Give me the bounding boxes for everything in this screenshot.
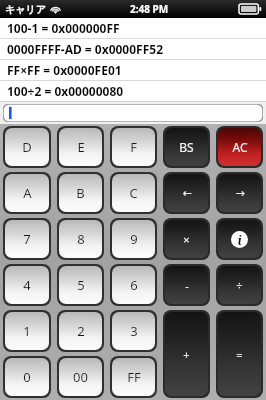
staticText: i — [237, 232, 242, 248]
button[interactable]: BS — [165, 128, 208, 166]
staticText: 6 — [130, 276, 138, 294]
staticText: 3 — [130, 322, 138, 340]
staticText: × — [183, 232, 190, 247]
button[interactable]: 100÷2 = 0x00000080 — [0, 81, 266, 101]
button[interactable]: Move right — [218, 174, 261, 212]
button[interactable]: Subtract — [165, 266, 208, 304]
button[interactable]: Add — [165, 312, 208, 396]
staticText: 100÷2 = 0x00000080 — [7, 83, 124, 99]
button[interactable]: Info — [218, 220, 261, 258]
button[interactable]: F — [112, 128, 155, 166]
button[interactable]: A — [5, 174, 49, 212]
staticText: 2 — [77, 322, 85, 340]
button[interactable]: 2 — [59, 312, 102, 350]
button[interactable]: 3 — [112, 312, 155, 350]
button[interactable] — [3, 104, 263, 122]
staticText: B — [76, 184, 85, 202]
staticText: BS — [179, 139, 194, 155]
staticText: 2:48 PM — [130, 2, 169, 16]
staticText: 100-1 = 0x000000FF — [7, 20, 120, 36]
staticText: 7 — [23, 230, 31, 248]
button[interactable]: 1 — [5, 312, 49, 350]
staticText: = — [236, 347, 243, 362]
staticText: → — [235, 187, 245, 200]
button[interactable]: 6 — [112, 266, 155, 304]
staticText: C — [129, 184, 138, 202]
button[interactable]: FF — [112, 358, 155, 396]
button[interactable]: Multiply — [165, 220, 208, 258]
staticText: ← — [182, 187, 192, 200]
button[interactable]: 9 — [112, 220, 155, 258]
button[interactable]: 100-1 = 0x000000FF — [0, 18, 266, 38]
button[interactable]: B — [59, 174, 102, 212]
staticText: 0 — [23, 368, 31, 386]
staticText: A — [23, 184, 32, 202]
button[interactable]: Divide — [218, 266, 261, 304]
button[interactable]: C — [112, 174, 155, 212]
button[interactable]: Move left — [165, 174, 208, 212]
staticText: FF — [127, 368, 141, 386]
staticText: 1 — [23, 322, 31, 340]
button[interactable]: 5 — [59, 266, 102, 304]
staticText: ÷ — [236, 278, 243, 293]
button[interactable]: 0 — [5, 358, 49, 396]
button[interactable]: E — [59, 128, 102, 166]
button[interactable]: AC — [218, 128, 261, 166]
button[interactable]: 7 — [5, 220, 49, 258]
staticText: D — [22, 138, 32, 156]
staticText: F — [130, 138, 137, 156]
button[interactable]: Equals — [218, 312, 261, 396]
button[interactable]: 00 — [59, 358, 102, 396]
staticText: FF×FF = 0x0000FE01 — [7, 62, 122, 78]
button[interactable]: 8 — [59, 220, 102, 258]
staticText: キャリア — [5, 3, 46, 16]
button[interactable]: 0000FFFF-AD = 0x0000FF52 — [0, 39, 266, 59]
button[interactable]: FF×FF = 0x0000FE01 — [0, 60, 266, 80]
staticText: 0000FFFF-AD = 0x0000FF52 — [7, 41, 164, 57]
button[interactable]: 4 — [5, 266, 49, 304]
staticText: 8 — [77, 230, 85, 248]
staticText: E — [77, 138, 85, 156]
staticText: AC — [232, 139, 248, 155]
button[interactable]: D — [5, 128, 49, 166]
staticText: 9 — [130, 230, 138, 248]
staticText: 00 — [73, 368, 88, 386]
staticText: 5 — [77, 276, 85, 294]
staticText: + — [183, 347, 190, 362]
staticText: 4 — [23, 276, 31, 294]
staticText: - — [185, 278, 189, 293]
